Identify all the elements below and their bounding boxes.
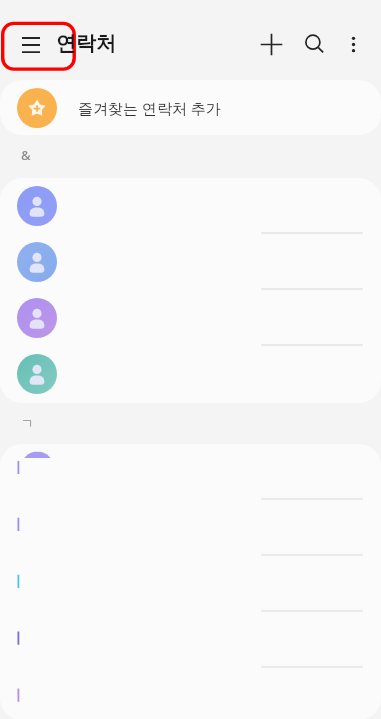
button[interactable] — [0, 290, 381, 346]
button[interactable]: Add contact — [250, 23, 292, 65]
button[interactable] — [0, 444, 381, 500]
staticText: & — [21, 146, 31, 164]
staticText: ㄱ — [21, 415, 34, 431]
button[interactable] — [0, 668, 381, 719]
button[interactable] — [0, 346, 381, 402]
staticText: 즐겨찾는 연락처 추가 — [78, 98, 221, 118]
button[interactable] — [0, 234, 381, 290]
button[interactable]: 즐겨찾는 연락처 추가 — [0, 80, 381, 135]
button[interactable]: More options — [332, 23, 374, 65]
button[interactable] — [0, 178, 381, 234]
button[interactable] — [0, 556, 381, 612]
staticText: 연락처 — [56, 31, 116, 56]
button[interactable]: Search — [293, 23, 335, 65]
button[interactable] — [0, 500, 381, 556]
button[interactable] — [0, 612, 381, 668]
button[interactable]: Navigation menu — [3, 22, 73, 68]
